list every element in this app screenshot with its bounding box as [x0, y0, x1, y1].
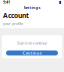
button[interactable]: Continue	[6, 50, 58, 55]
staticText: Sign in to continue	[17, 40, 47, 45]
staticText: your profile	[3, 21, 23, 26]
staticText: ▮	[59, 0, 61, 4]
staticText: Settings	[23, 5, 40, 10]
staticText: Continue	[22, 50, 41, 56]
staticText: 9:41	[3, 0, 10, 5]
staticText: Account	[3, 11, 29, 20]
